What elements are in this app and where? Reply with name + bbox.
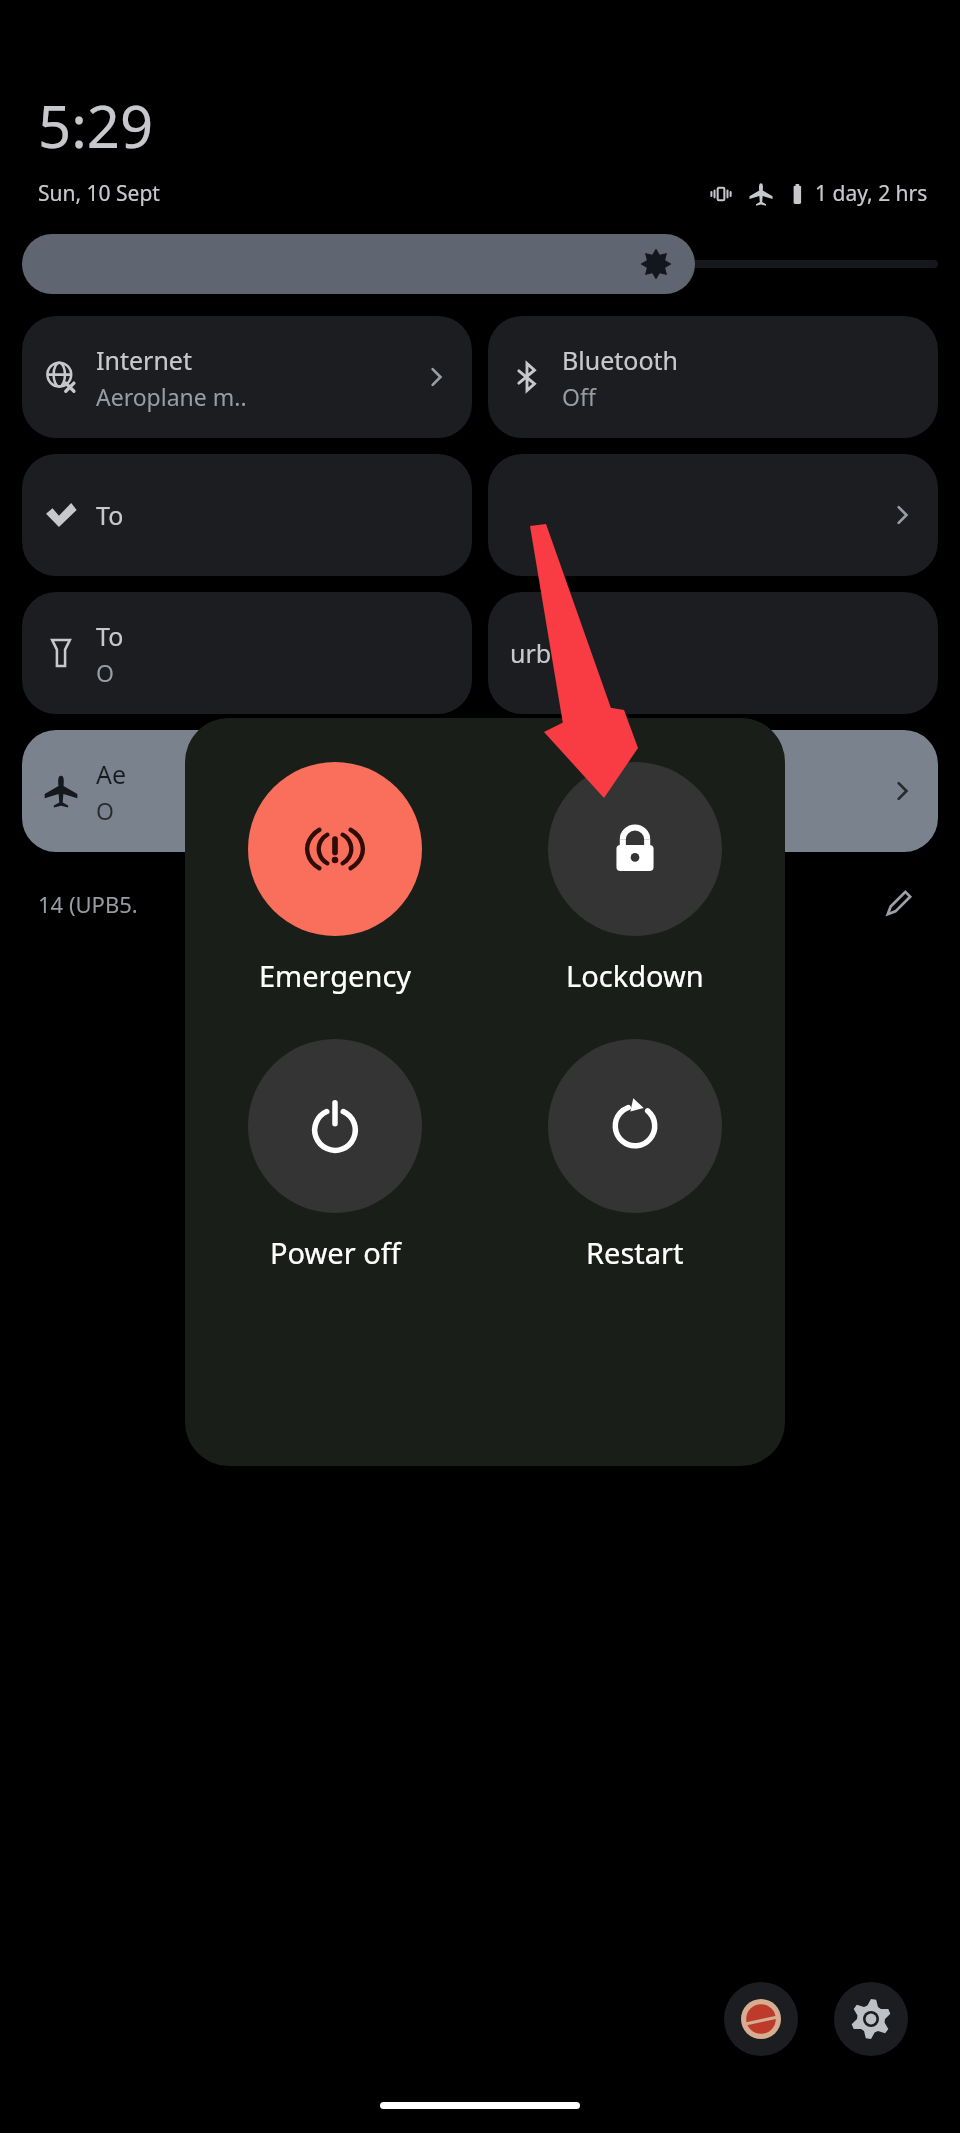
staticText: To: [96, 498, 124, 532]
staticText: 1 day, 2 hrs: [815, 179, 928, 208]
button[interactable]: Lockdown: [485, 762, 785, 995]
button[interactable]: To: [22, 454, 472, 576]
button[interactable]: urb: [488, 592, 938, 714]
button[interactable]: Bluetooth: [488, 316, 938, 438]
staticText: To: [96, 619, 124, 653]
staticText: urb: [510, 636, 552, 670]
button[interactable]: Restart: [485, 1039, 785, 1272]
staticText: Sun, 10 Sept: [38, 179, 160, 208]
button[interactable]: Power off: [185, 1039, 485, 1272]
staticText: Aeroplane m..: [96, 381, 247, 412]
button[interactable]: Edit tiles: [870, 876, 926, 932]
staticText: Lockdown: [566, 956, 704, 995]
button[interactable]: To: [22, 592, 472, 714]
staticText: 5:29: [38, 86, 154, 165]
button[interactable]: Emergency: [185, 762, 485, 995]
button[interactable]: Internet: [22, 316, 472, 438]
button[interactable]: [488, 730, 938, 852]
staticText: O: [96, 795, 114, 826]
staticText: 14 (UPB5.: [38, 889, 138, 919]
staticText: Internet: [96, 343, 192, 377]
button[interactable]: Settings: [834, 1982, 908, 2056]
button[interactable]: [488, 454, 938, 576]
staticText: Off: [562, 381, 596, 412]
staticText: Emergency: [259, 956, 412, 995]
button[interactable]: Ae: [22, 730, 472, 852]
staticText: Bluetooth: [562, 343, 679, 377]
staticText: Restart: [586, 1233, 684, 1272]
staticText: Ae: [96, 757, 127, 791]
button[interactable]: Brightness: [22, 234, 938, 294]
button[interactable]: User account: [724, 1982, 798, 2056]
staticText: O: [96, 657, 114, 688]
staticText: Power off: [270, 1233, 401, 1272]
